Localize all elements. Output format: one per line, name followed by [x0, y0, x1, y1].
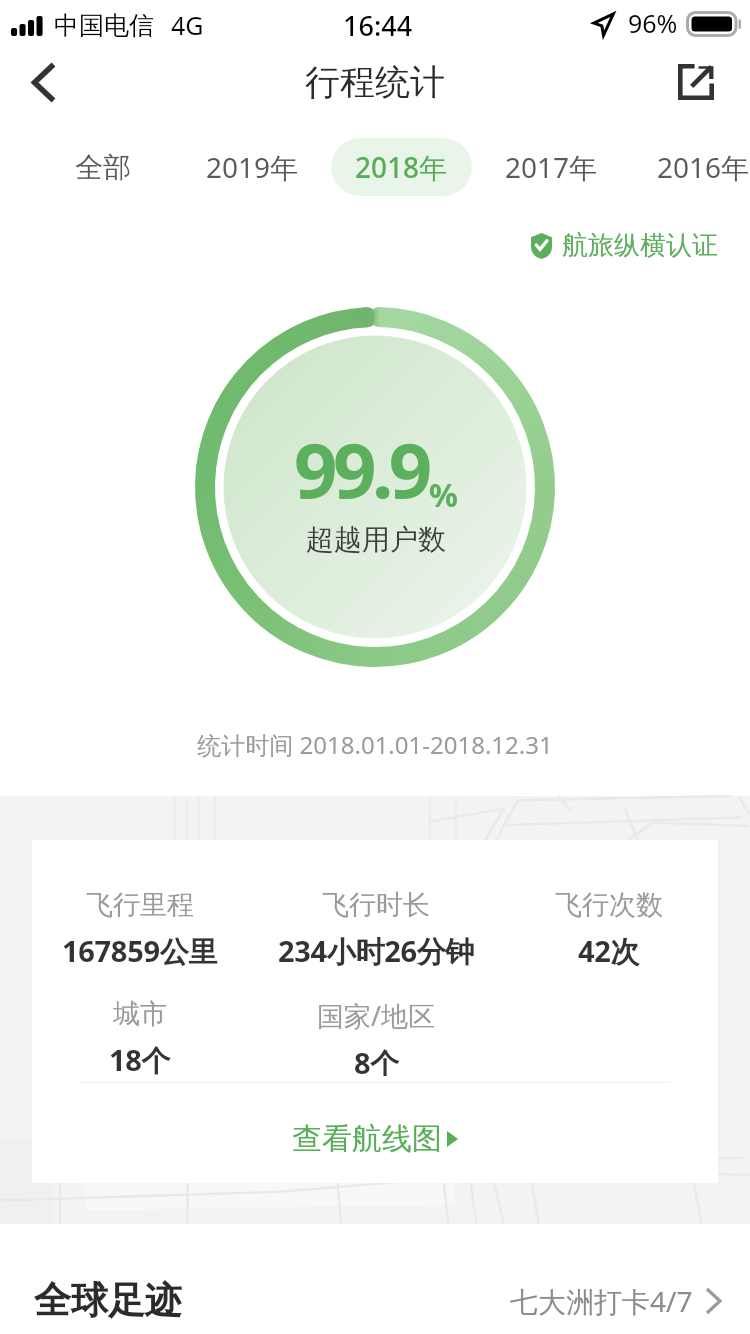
staticText: 234小时26分钟	[278, 931, 475, 967]
staticText: 16:44	[343, 7, 413, 44]
staticText: 42次	[578, 931, 640, 967]
staticText: 飞行时长	[322, 888, 430, 922]
staticText: 8个	[354, 1043, 399, 1076]
staticText: 超越用户数	[306, 522, 446, 557]
staticText: 行程统计	[305, 60, 445, 104]
staticText: 全部	[75, 150, 131, 185]
staticText: 城市	[113, 997, 167, 1031]
staticText: 飞行里程	[86, 888, 194, 922]
staticText: 统计时间 2018.01.01-2018.12.31	[0, 728, 750, 761]
button[interactable]: 2019年	[192, 138, 312, 196]
staticText: 99.9	[294, 417, 428, 521]
button[interactable]: 查看航线图	[32, 1117, 718, 1161]
staticText: 2016年	[657, 148, 750, 186]
staticText: 2019年	[206, 148, 299, 186]
staticText: 七大洲打卡4/7	[510, 1282, 693, 1320]
staticText: %	[429, 473, 458, 517]
staticText: 飞行次数	[555, 888, 663, 922]
staticText: 2017年	[505, 148, 598, 186]
button[interactable]: 返回	[12, 51, 74, 113]
staticText: 全球足迹	[34, 1277, 182, 1324]
staticText: 18个	[109, 1040, 171, 1076]
staticText: 航旅纵横认证	[562, 229, 718, 262]
button[interactable]: 航旅纵横认证	[531, 229, 718, 262]
button[interactable]: 分享	[665, 51, 727, 113]
button[interactable]: 全球足迹	[0, 1267, 750, 1334]
staticText: 167859公里	[62, 931, 218, 967]
staticText: 4G	[171, 8, 204, 42]
staticText: 国家/地区	[317, 997, 436, 1034]
staticText: 2018年	[355, 148, 448, 186]
button[interactable]: 全部	[43, 138, 163, 196]
staticText: 中国电信	[54, 10, 154, 41]
button[interactable]: 2016年	[643, 138, 750, 196]
staticText: 96%	[628, 6, 678, 40]
button[interactable]: 2018年	[331, 138, 472, 196]
staticText: 查看航线图	[292, 1120, 442, 1158]
button[interactable]: 2017年	[491, 138, 611, 196]
